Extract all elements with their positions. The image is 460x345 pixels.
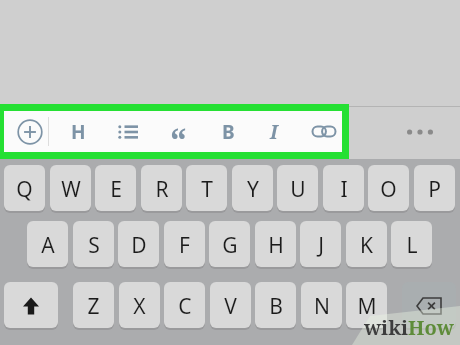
staticText: I [340, 175, 348, 204]
button[interactable]: Italic [252, 111, 296, 152]
staticText: P [428, 175, 441, 204]
button[interactable]: D [118, 221, 159, 269]
button[interactable]: T [186, 165, 227, 213]
button[interactable]: B [255, 282, 296, 330]
staticText: “ [170, 117, 187, 158]
button[interactable]: Bold [206, 111, 250, 152]
button[interactable]: G [209, 221, 250, 269]
staticText: O [380, 175, 397, 204]
staticText: K [360, 231, 373, 260]
button[interactable]: C [164, 282, 205, 330]
staticText: E [110, 175, 122, 204]
button[interactable]: S [73, 221, 114, 269]
staticText: F [179, 231, 190, 260]
button[interactable]: J [300, 221, 341, 269]
staticText: B [269, 292, 283, 321]
button[interactable]: H [255, 221, 296, 269]
button[interactable]: Quote [156, 111, 200, 152]
staticText: A [41, 231, 55, 260]
button[interactable]: X [119, 282, 160, 330]
button[interactable]: Insert link [302, 111, 346, 152]
staticText: H [71, 119, 86, 145]
staticText: T [201, 175, 213, 204]
button[interactable]: Bulleted list [106, 111, 150, 152]
button[interactable]: E [95, 165, 136, 213]
button[interactable]: U [277, 165, 318, 213]
staticText: How [408, 314, 454, 341]
staticText: Z [87, 292, 100, 321]
staticText: N [314, 292, 330, 321]
button[interactable]: N [301, 282, 342, 330]
staticText: C [178, 292, 192, 321]
staticText: S [88, 231, 100, 260]
staticText: H [268, 231, 284, 260]
button[interactable]: A [27, 221, 68, 269]
staticText: D [131, 231, 147, 260]
staticText: M [357, 292, 377, 321]
staticText: X [133, 292, 146, 321]
button[interactable]: I [323, 165, 364, 213]
staticText: R [155, 175, 169, 204]
button[interactable]: O [368, 165, 409, 213]
button[interactable]: More options [398, 112, 442, 152]
button[interactable]: W [50, 165, 91, 213]
button[interactable]: Z [73, 282, 114, 330]
staticText: I [270, 119, 278, 145]
staticText: V [224, 292, 237, 321]
button[interactable]: Backspace [402, 282, 456, 330]
staticText: Q [16, 175, 33, 204]
button[interactable]: M [346, 282, 387, 330]
staticText: U [290, 175, 306, 204]
staticText: B [222, 119, 235, 145]
staticText: G [222, 231, 238, 260]
staticText: L [406, 231, 418, 260]
button[interactable]: K [346, 221, 387, 269]
staticText: Y [247, 175, 259, 204]
button[interactable]: L [391, 221, 432, 269]
button[interactable]: R [141, 165, 182, 213]
button[interactable]: F [164, 221, 205, 269]
staticText: W [61, 175, 81, 204]
button[interactable]: Heading [56, 111, 100, 152]
staticText: wiki [364, 314, 408, 341]
button[interactable]: Shift [4, 282, 58, 330]
button[interactable]: Q [4, 165, 45, 213]
staticText: J [318, 231, 324, 260]
button[interactable]: P [414, 165, 455, 213]
button[interactable]: Y [232, 165, 273, 213]
button[interactable]: V [210, 282, 251, 330]
button[interactable]: Insert [8, 111, 52, 152]
